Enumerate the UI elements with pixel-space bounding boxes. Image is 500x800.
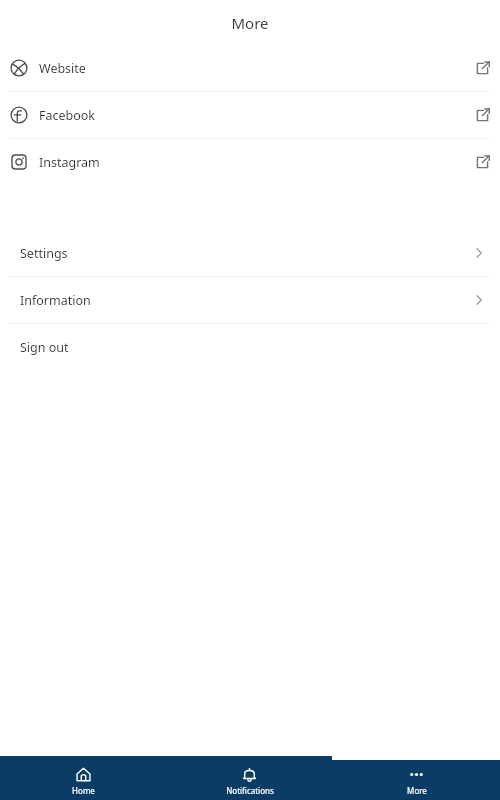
staticText: Website	[39, 60, 86, 77]
other: Open external link	[475, 108, 490, 123]
staticText: Sign out	[20, 339, 69, 356]
other: Instagram	[10, 153, 28, 171]
staticText: Home	[72, 785, 95, 796]
button[interactable]: Home	[0, 762, 166, 799]
staticText: More	[231, 13, 269, 33]
other: Open external link	[475, 61, 490, 76]
staticText: Information	[20, 292, 91, 309]
staticText: Instagram	[39, 154, 100, 171]
other: Website	[10, 59, 28, 77]
button[interactable]: Website	[0, 45, 500, 91]
staticText: Notifications	[226, 785, 274, 796]
staticText: Facebook	[39, 107, 96, 124]
staticText: More	[407, 785, 427, 796]
other: Facebook	[10, 106, 28, 124]
button[interactable]: Instagram	[0, 139, 500, 185]
button[interactable]: Sign out	[0, 324, 500, 370]
button[interactable]: Information	[0, 277, 500, 323]
button[interactable]: Notifications	[166, 762, 333, 799]
other: Open external link	[475, 155, 490, 170]
button[interactable]: Facebook	[0, 92, 500, 138]
button[interactable]: More	[333, 762, 500, 799]
staticText: Settings	[20, 245, 68, 262]
button[interactable]: Settings	[0, 230, 500, 276]
